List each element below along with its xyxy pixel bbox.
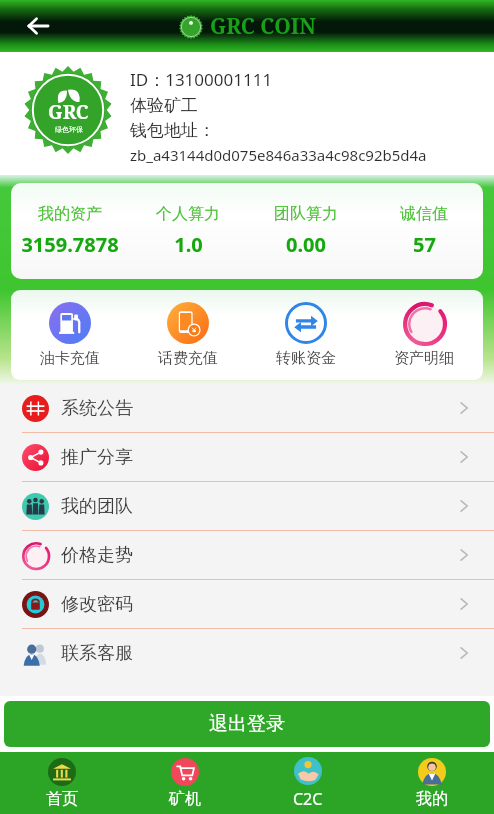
staticText: 矿机 — [169, 789, 201, 809]
staticText: 资产明细 — [394, 349, 454, 368]
staticText: 话费充值 — [158, 349, 218, 368]
staticText: 1.0 — [174, 231, 203, 258]
staticText: 我的资产 — [38, 204, 102, 224]
staticText: 油卡充值 — [40, 349, 100, 368]
staticText: 联系客服 — [61, 642, 133, 665]
staticText: ID：13100001111 — [130, 68, 273, 91]
staticText: 诚信值 — [400, 204, 448, 224]
staticText: zb_a43144d0d075e846a33a4c98c92b5d4a — [130, 145, 427, 165]
button[interactable]: 修改密码 — [0, 580, 494, 628]
staticText: 系统公告 — [61, 397, 133, 420]
staticText: 0.00 — [286, 231, 326, 258]
staticText: 个人算力 — [156, 204, 220, 224]
staticText: 修改密码 — [61, 593, 133, 616]
staticText: 我的 — [416, 789, 448, 809]
button[interactable]: 我的资产 — [11, 204, 129, 258]
button[interactable]: Back — [18, 6, 58, 46]
button[interactable]: 退出登录 — [4, 701, 490, 747]
staticText: 价格走势 — [61, 544, 133, 567]
button[interactable]: 话费充值 — [129, 298, 247, 372]
staticText: 57 — [413, 231, 436, 258]
staticText: 退出登录 — [209, 712, 285, 736]
button[interactable]: 矿机 — [123, 752, 246, 814]
button[interactable]: 首页 — [0, 752, 123, 814]
staticText: 绿色环保 — [55, 125, 83, 134]
staticText: 团队算力 — [274, 204, 338, 224]
button[interactable]: 系统公告 — [0, 384, 494, 432]
staticText: 体验矿工 — [130, 95, 198, 116]
staticText: 首页 — [46, 789, 78, 809]
button[interactable]: 资产明细 — [365, 298, 483, 372]
button[interactable]: 转账资金 — [247, 298, 365, 372]
staticText: 3159.7878 — [21, 231, 119, 258]
button[interactable]: 团队算力 — [247, 204, 365, 258]
staticText: C2C — [293, 788, 323, 810]
staticText: 我的团队 — [61, 495, 133, 518]
button[interactable]: 诚信值 — [365, 204, 483, 258]
button[interactable]: 我的团队 — [0, 482, 494, 530]
staticText: GRC COIN — [210, 12, 316, 41]
staticText: 推广分享 — [61, 446, 133, 469]
button[interactable]: 价格走势 — [0, 531, 494, 579]
staticText: 转账资金 — [276, 349, 336, 368]
button[interactable]: C2C — [246, 752, 370, 814]
button[interactable]: 个人算力 — [129, 204, 247, 258]
staticText: 钱包地址： — [130, 120, 215, 141]
button[interactable]: 我的 — [370, 752, 494, 814]
button[interactable]: 联系客服 — [0, 629, 494, 677]
button[interactable]: 推广分享 — [0, 433, 494, 481]
button[interactable]: 油卡充值 — [11, 298, 129, 372]
staticText: GRC — [48, 99, 89, 125]
